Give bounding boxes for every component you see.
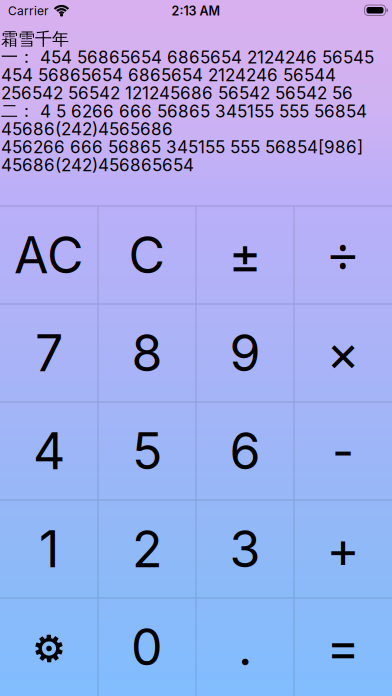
- staticText: ÷: [328, 220, 358, 290]
- button[interactable]: =: [294, 598, 392, 696]
- button[interactable]: 7: [0, 304, 98, 402]
- button[interactable]: 9: [196, 304, 294, 402]
- staticText: 0: [131, 617, 163, 677]
- button[interactable]: 5: [98, 402, 196, 500]
- staticText: 256542 56542 121245686 56542 56542 56: [1, 83, 353, 103]
- button[interactable]: 2: [98, 500, 196, 598]
- button[interactable]: -: [294, 402, 392, 500]
- button[interactable]: C: [98, 206, 196, 304]
- staticText: 9: [229, 323, 260, 383]
- button[interactable]: 0: [98, 598, 196, 696]
- button[interactable]: +: [294, 500, 392, 598]
- staticText: 456266 666 56865 345155 555 56854[986]: [1, 137, 363, 157]
- staticText: 一： 454 56865654 6865654 2124246 56545: [1, 46, 374, 68]
- button[interactable]: 6: [196, 402, 294, 500]
- staticText: C: [128, 225, 165, 285]
- staticText: 3: [229, 519, 260, 579]
- button[interactable]: ±: [196, 206, 294, 304]
- button[interactable]: 1: [0, 500, 98, 598]
- button[interactable]: AC: [0, 206, 98, 304]
- staticText: ±: [228, 225, 261, 285]
- button[interactable]: 4: [0, 402, 98, 500]
- staticText: 7: [35, 323, 63, 383]
- button[interactable]: Settings: [0, 598, 98, 696]
- staticText: .: [238, 617, 252, 677]
- button[interactable]: 3: [196, 500, 294, 598]
- staticText: 二： 4 5 6266 666 56865 345155 555 56854: [1, 100, 367, 122]
- staticText: 45686(242)4565686: [1, 119, 173, 139]
- staticText: Carrier: [8, 4, 49, 18]
- staticText: 454 56865654 6865654 2124246 56544: [1, 65, 336, 85]
- staticText: +: [326, 519, 359, 579]
- button[interactable]: 8: [98, 304, 196, 402]
- staticText: -: [332, 422, 354, 480]
- staticText: ×: [326, 323, 359, 383]
- staticText: 6: [229, 421, 260, 481]
- staticText: 4: [33, 421, 65, 481]
- staticText: AC: [14, 225, 84, 285]
- button[interactable]: ÷: [294, 206, 392, 304]
- staticText: =: [326, 617, 359, 677]
- staticText: 2: [132, 519, 162, 579]
- button[interactable]: .: [196, 598, 294, 696]
- staticText: 2:13 AM: [171, 3, 220, 19]
- staticText: 5: [132, 421, 162, 481]
- staticText: 霜雪千年: [1, 28, 69, 50]
- staticText: 1: [39, 519, 59, 579]
- button[interactable]: ×: [294, 304, 392, 402]
- staticText: 8: [131, 323, 162, 383]
- staticText: 45686(242)456865654: [1, 155, 194, 175]
